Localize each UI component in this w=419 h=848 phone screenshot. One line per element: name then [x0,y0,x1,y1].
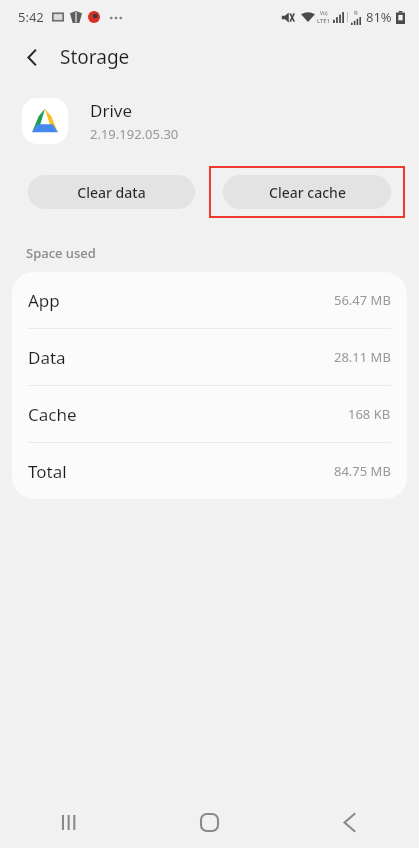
button[interactable]: Clear cache [223,175,391,209]
staticText: 56.47 MB [334,291,391,309]
staticText: 2.19.192.05.30 [90,125,179,143]
staticText: Clear data [77,183,146,202]
staticText: 28.11 MB [334,348,391,366]
button[interactable]: Home [139,796,279,848]
staticText: Vo) [320,10,328,17]
button[interactable]: Recent apps [0,796,139,848]
staticText: 168 KB [348,405,391,423]
button[interactable]: Back [10,35,54,79]
staticText: Drive [90,99,133,122]
staticText: Total [28,460,67,483]
button[interactable]: Clear data [28,175,195,209]
staticText: Data [28,346,66,369]
button[interactable]: Data [12,329,407,386]
staticText: Cache [28,403,77,426]
staticText: Clear cache [269,183,346,202]
staticText: Space used [26,244,96,262]
staticText: 81% [366,8,392,26]
staticText: 5:42 [18,8,44,26]
button[interactable]: App [12,272,407,329]
staticText: LTE1 [317,17,331,25]
staticText: R [354,9,358,17]
button[interactable]: Cache [12,386,407,443]
staticText: Storage [60,44,130,70]
staticText: App [28,289,60,312]
button[interactable]: Back [279,796,419,848]
button[interactable]: Total [12,443,407,499]
staticText: 84.75 MB [334,462,391,480]
